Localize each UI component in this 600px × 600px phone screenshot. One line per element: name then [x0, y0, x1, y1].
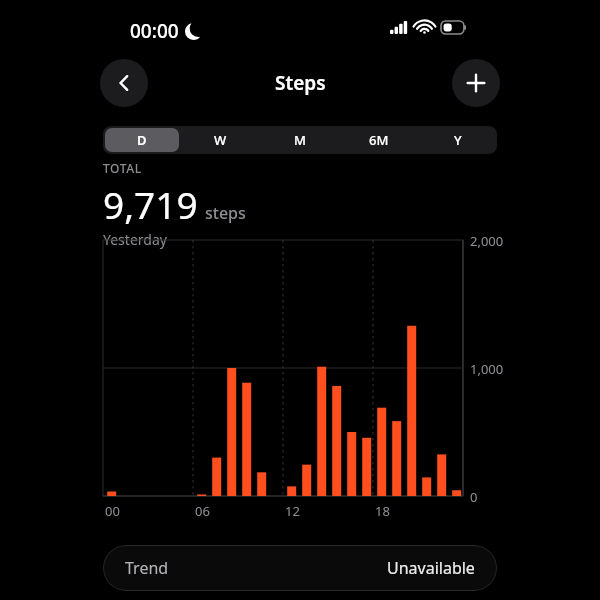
button[interactable]: Back	[100, 59, 148, 107]
staticText: 2,000	[470, 232, 504, 250]
staticText: M	[294, 131, 306, 149]
staticText: TOTAL	[103, 160, 142, 176]
button[interactable]: W	[181, 126, 260, 154]
staticText: Unavailable	[387, 557, 475, 579]
staticText: D	[137, 131, 147, 149]
staticText: 6M	[369, 131, 389, 149]
staticText: steps	[205, 202, 246, 224]
staticText: 00	[105, 502, 120, 520]
button[interactable]: Y	[418, 126, 497, 154]
staticText: 00:00	[130, 18, 179, 44]
button[interactable]: D	[103, 126, 181, 154]
staticText: W	[214, 131, 227, 149]
staticText: 0	[470, 488, 478, 506]
button[interactable]: Trend	[103, 545, 497, 591]
staticText: Trend	[125, 557, 169, 579]
staticText: 9,719	[103, 179, 198, 229]
staticText: Steps	[275, 70, 326, 96]
staticText: 06	[195, 502, 210, 520]
button[interactable]: Add	[452, 59, 500, 107]
button[interactable]: M	[260, 126, 339, 154]
staticText: Yesterday	[103, 230, 167, 249]
button[interactable]: 6M	[339, 126, 418, 154]
staticText: Y	[454, 131, 462, 149]
staticText: 1,000	[470, 360, 504, 378]
staticText: 12	[285, 502, 300, 520]
staticText: 18	[375, 502, 390, 520]
